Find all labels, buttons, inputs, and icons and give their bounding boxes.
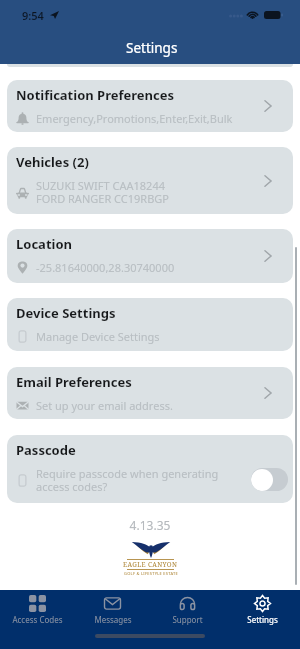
staticText: Vehicles (2) <box>16 153 89 171</box>
button[interactable]: Access Codes <box>0 595 75 625</box>
staticText: Device Settings <box>16 304 116 322</box>
staticText: Support <box>172 614 203 625</box>
staticText: Manage Device Settings <box>36 329 160 344</box>
staticText: 9:54 <box>22 8 44 23</box>
staticText: -25.81640000,28.30740000 <box>36 260 175 275</box>
staticText: Emergency,Promotions,Enter,Exit,Bulk <box>36 111 233 126</box>
button[interactable]: Settings <box>225 595 300 625</box>
button[interactable]: Support <box>150 595 225 625</box>
other: Open Notification Preferences <box>264 100 272 112</box>
other: Open Vehicles (2) <box>264 175 272 187</box>
staticText: Notification Preferences <box>16 86 175 104</box>
staticText: EAGLE CANYON <box>123 560 178 569</box>
staticText: Set up your email address. <box>36 398 173 413</box>
button[interactable]: Vehicles (2) <box>7 147 293 214</box>
staticText: Settings <box>126 39 178 57</box>
button[interactable]: Require passcode toggle <box>251 468 288 491</box>
staticText: Messages <box>94 614 132 625</box>
staticText: GOLF & LIFESTYLE ESTATE <box>124 571 178 576</box>
staticText: Access Codes <box>12 614 63 625</box>
staticText: Email Preferences <box>16 373 132 391</box>
button[interactable]: Notification Preferences <box>7 80 293 132</box>
button[interactable]: Email Preferences <box>7 367 293 419</box>
staticText: Location <box>16 235 72 253</box>
button[interactable]: Passcode <box>7 435 293 503</box>
staticText: 4.13.35 <box>0 517 300 533</box>
button[interactable]: Messages <box>75 595 150 625</box>
other: Open Email Preferences <box>264 387 272 399</box>
staticText: Require passcode when generating access … <box>36 466 219 494</box>
staticText: Passcode <box>16 441 76 459</box>
staticText: Settings <box>247 614 278 625</box>
staticText: SUZUKI SWIFT CAA18244 FORD RANGER CC19RB… <box>36 178 170 206</box>
other: Open Location <box>264 250 272 262</box>
button[interactable]: Device Settings <box>7 298 293 351</box>
button[interactable]: Location <box>7 229 293 283</box>
